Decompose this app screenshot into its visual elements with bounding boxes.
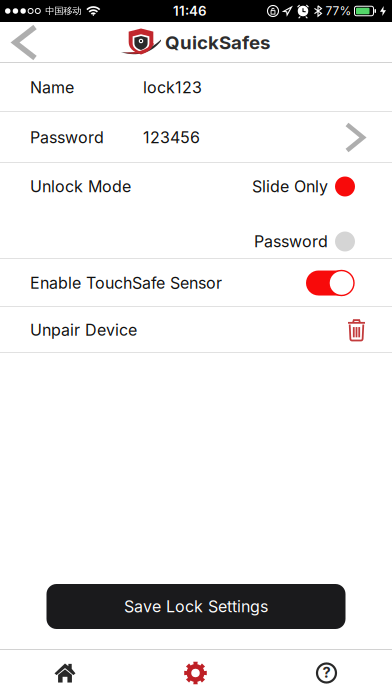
staticText: Unpair Device	[30, 321, 137, 339]
staticText: 77%	[325, 4, 351, 18]
button[interactable]: Back	[0, 22, 35, 63]
button[interactable]: Save Lock Settings	[46, 584, 345, 629]
button[interactable]: Enable TouchSafe Sensor	[306, 270, 354, 295]
button[interactable]: Slide Only	[252, 176, 355, 196]
staticText: Unlock Mode	[30, 177, 131, 196]
button[interactable]: Settings	[130, 650, 261, 696]
staticText: 11:46	[173, 3, 207, 19]
staticText: QuickSafes	[165, 31, 270, 53]
button[interactable]: Help	[261, 650, 392, 696]
button[interactable]: Password	[254, 231, 355, 251]
button[interactable]: Password	[0, 112, 392, 163]
staticText: ?	[322, 664, 330, 681]
staticText: Password	[30, 128, 104, 147]
button[interactable]: Home	[0, 650, 130, 696]
staticText: lock123	[143, 78, 202, 97]
staticText: Save Lock Settings	[124, 597, 268, 616]
staticText: Slide Only	[252, 177, 328, 196]
staticText: Name	[30, 78, 74, 97]
button[interactable]: Unpair Device	[0, 307, 392, 353]
staticText: Enable TouchSafe Sensor	[30, 274, 222, 292]
staticText: Password	[254, 232, 328, 251]
button[interactable]: Name	[0, 63, 392, 112]
staticText: 123456	[143, 128, 200, 147]
staticText: 中国移动	[45, 5, 81, 17]
